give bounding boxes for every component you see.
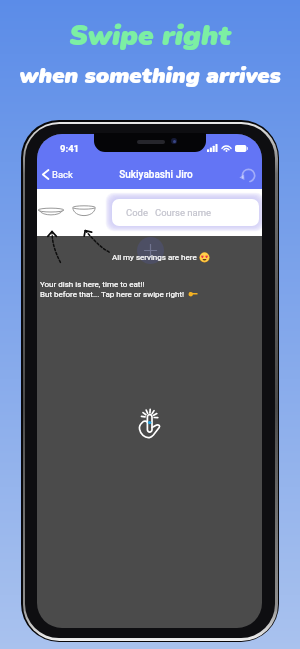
staticText: Code — [126, 207, 148, 218]
button[interactable]: Bowl — [70, 198, 98, 224]
staticText: Sukiyabashi Jiro — [78, 169, 234, 181]
button[interactable]: Back — [37, 164, 78, 185]
staticText: Back — [52, 169, 73, 180]
button[interactable]: Code — [112, 199, 259, 226]
staticText: Course name — [155, 207, 212, 218]
staticText: All my servings are here — [112, 253, 197, 262]
button[interactable]: Refresh — [234, 161, 262, 189]
staticText: when something arrives — [0, 61, 300, 91]
staticText: Your dish is here, time to eat!! — [40, 280, 145, 289]
staticText: Swipe right — [0, 17, 300, 55]
button[interactable]: Add — [137, 237, 164, 264]
staticText: But before that... Tap here or swipe rig… — [40, 290, 185, 299]
staticText: 9:41 — [60, 143, 80, 154]
button[interactable]: Plate — [37, 200, 65, 224]
other: Tap here — [137, 406, 161, 439]
